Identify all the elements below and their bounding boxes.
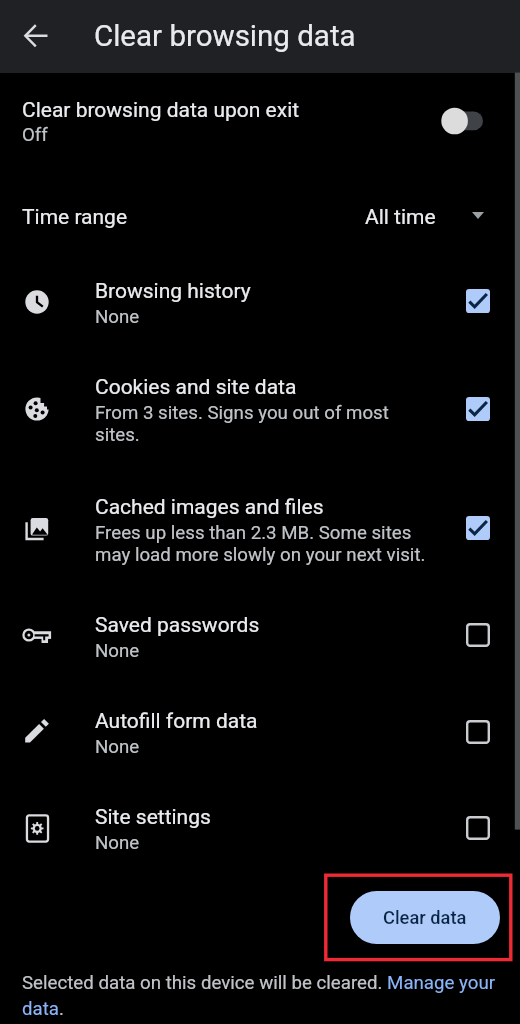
button[interactable]: Browsing history checkbox (466, 289, 490, 313)
button[interactable]: Autofill form data (0, 689, 520, 786)
button[interactable]: Time range (0, 193, 520, 243)
button[interactable]: Cached images and files (0, 475, 520, 593)
button[interactable]: Clear data (350, 891, 500, 944)
staticText: Cached images and files (95, 494, 324, 519)
staticText: From 3 sites. Signs you out of most site… (95, 402, 435, 446)
button[interactable]: Cookies and site data checkbox (466, 397, 490, 421)
button[interactable]: Clear browsing data upon exit (0, 83, 520, 157)
staticText: None (95, 306, 435, 328)
staticText: None (95, 832, 435, 854)
staticText: Site settings (95, 804, 211, 829)
staticText: Clear browsing data (94, 19, 356, 54)
staticText: Clear browsing data upon exit (22, 97, 300, 122)
staticText: None (95, 640, 435, 662)
button[interactable]: Browsing history (0, 259, 520, 356)
staticText: Selected data on this device will be cle… (22, 968, 500, 1020)
staticText: None (95, 736, 435, 758)
button[interactable]: Clear browsing data upon exit toggle (433, 104, 491, 138)
button[interactable]: Cached images and files checkbox (466, 516, 490, 540)
button[interactable]: Autofill form data checkbox (466, 720, 490, 744)
button[interactable]: Saved passwords checkbox (466, 623, 490, 647)
button[interactable]: Saved passwords (0, 593, 520, 690)
button[interactable]: Site settings (0, 785, 520, 882)
button[interactable]: Site settings checkbox (466, 816, 490, 840)
staticText: Time range (22, 204, 128, 229)
staticText: Off (22, 124, 48, 146)
staticText: Cookies and site data (95, 374, 297, 399)
button[interactable]: Back (16, 16, 56, 56)
staticText: Saved passwords (95, 612, 260, 637)
button[interactable]: Cookies and site data (0, 355, 520, 473)
staticText: Autofill form data (95, 708, 258, 733)
staticText: All time (365, 204, 436, 229)
staticText: Frees up less than 2.3 MB. Some sites ma… (95, 522, 435, 566)
staticText: Clear data (383, 907, 467, 928)
staticText: Browsing history (95, 278, 251, 303)
